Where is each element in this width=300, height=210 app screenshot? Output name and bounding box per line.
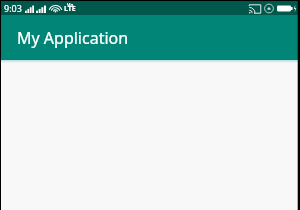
other: Wi-Fi connected <box>49 4 62 13</box>
staticText: 9:03 <box>4 2 22 14</box>
other: Battery charging <box>277 4 297 13</box>
staticText: Vo <box>67 2 74 9</box>
button[interactable]: My Application <box>1 15 298 60</box>
other: Cast screen <box>249 4 261 14</box>
other: Alarm set <box>263 3 275 14</box>
staticText: My Application <box>17 27 129 49</box>
staticText: LTE <box>64 4 76 14</box>
other: SIM 2 signal strength <box>36 4 46 13</box>
other: SIM 1 signal strength <box>25 4 34 13</box>
